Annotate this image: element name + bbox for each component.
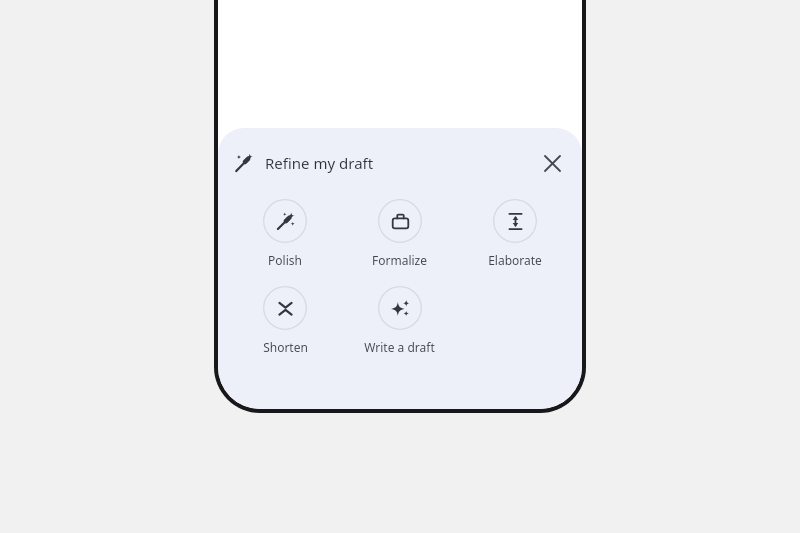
button[interactable]: Shorten bbox=[228, 286, 342, 355]
staticText: Elaborate bbox=[488, 252, 542, 268]
staticText: Polish bbox=[268, 252, 302, 268]
button[interactable]: Formalize bbox=[342, 199, 457, 268]
button[interactable]: Elaborate bbox=[457, 199, 572, 268]
staticText: Write a draft bbox=[364, 339, 435, 355]
staticText: Formalize bbox=[372, 252, 427, 268]
button[interactable]: Close bbox=[536, 147, 568, 179]
staticText: Refine my draft bbox=[265, 153, 374, 173]
staticText: Shorten bbox=[263, 339, 308, 355]
button[interactable]: Polish bbox=[228, 199, 342, 268]
button[interactable]: Write a draft bbox=[342, 286, 457, 355]
